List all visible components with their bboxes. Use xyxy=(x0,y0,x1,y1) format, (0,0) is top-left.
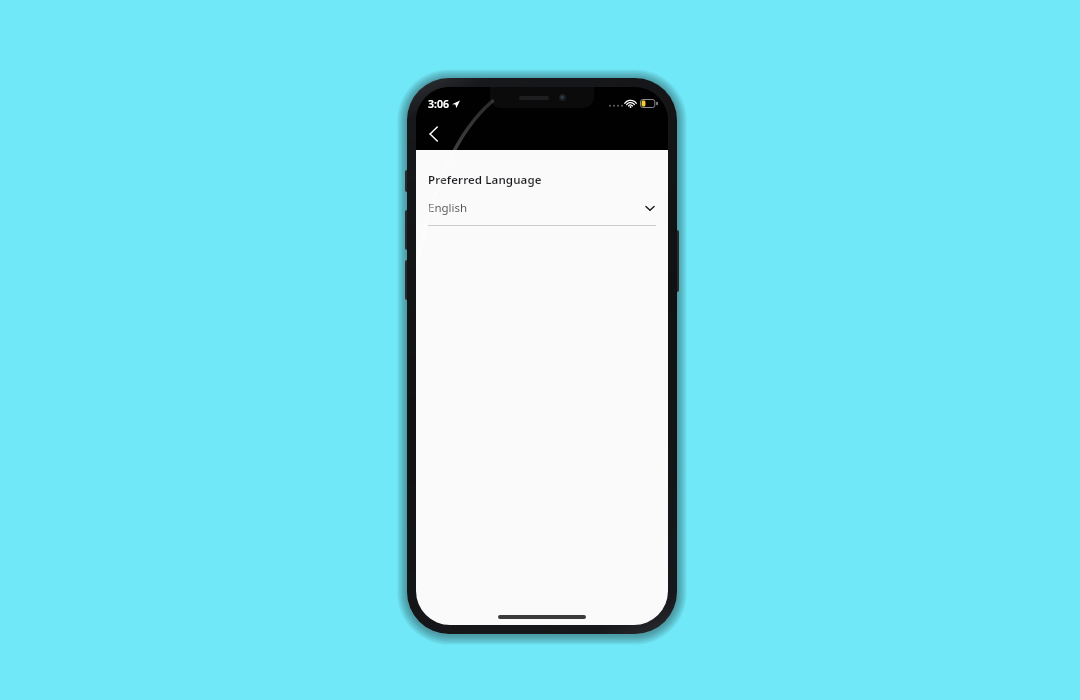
button[interactable]: English xyxy=(428,199,656,226)
staticText: English xyxy=(428,200,468,216)
staticText: Preferred Language xyxy=(428,172,542,188)
other: Expand language list xyxy=(644,202,656,214)
staticText: 3:06 xyxy=(428,97,449,111)
button[interactable]: Back xyxy=(416,118,450,150)
